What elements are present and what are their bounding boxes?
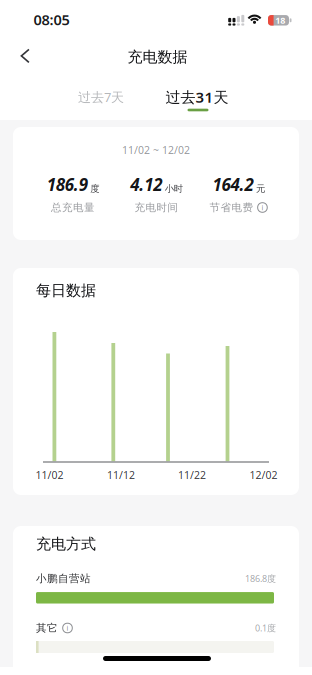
staticText: 12/02	[249, 468, 277, 482]
staticText: 总充电量	[51, 201, 95, 214]
staticText: 过去7天	[78, 88, 124, 106]
staticText: 元	[256, 183, 265, 195]
staticText: 充电数据	[127, 48, 187, 66]
staticText: 4.12	[130, 173, 162, 196]
button[interactable]: 节省电费说明	[257, 202, 268, 213]
button[interactable]: Back	[8, 39, 42, 73]
staticText: 11/02 ~ 12/02	[122, 143, 190, 157]
staticText: 充电方式	[36, 535, 96, 553]
button[interactable]: 过去31天	[155, 83, 239, 111]
staticText: 小时	[165, 183, 183, 195]
staticText: 节省电费	[209, 201, 253, 214]
staticText: 0.1度	[255, 622, 276, 634]
staticText: 过去31天	[165, 87, 228, 107]
button[interactable]: 过去7天	[63, 83, 139, 111]
staticText: 11/22	[178, 468, 206, 482]
staticText: 小鹏自营站	[36, 572, 91, 585]
staticText: 度	[90, 183, 99, 195]
staticText: 186.9	[47, 173, 88, 196]
staticText: 08:05	[33, 10, 69, 29]
staticText: 186.8度	[245, 572, 276, 585]
staticText: 其它	[36, 621, 58, 635]
staticText: i	[66, 623, 68, 633]
staticText: 11/12	[107, 468, 135, 482]
staticText: 18	[275, 14, 285, 26]
staticText: 充电时间	[134, 201, 178, 214]
staticText: 164.2	[212, 173, 253, 196]
staticText: 每日数据	[36, 281, 96, 300]
button[interactable]: 其它说明	[62, 622, 73, 633]
staticText: 11/02	[36, 468, 64, 482]
staticText: i	[261, 203, 263, 212]
